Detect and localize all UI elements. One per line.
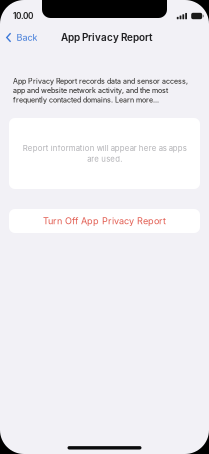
staticText: Turn Off App Privacy Report [43,215,166,226]
staticText: App Privacy Report records data and sens… [13,77,188,104]
staticText: 10.00 [13,11,33,21]
button[interactable]: Turn Off App Privacy Report [9,209,200,233]
staticText: Report information will appear here as a… [22,143,186,164]
staticText: Back [16,32,37,43]
staticText: App Privacy Report [61,31,152,43]
button[interactable]: Back [0,28,43,47]
